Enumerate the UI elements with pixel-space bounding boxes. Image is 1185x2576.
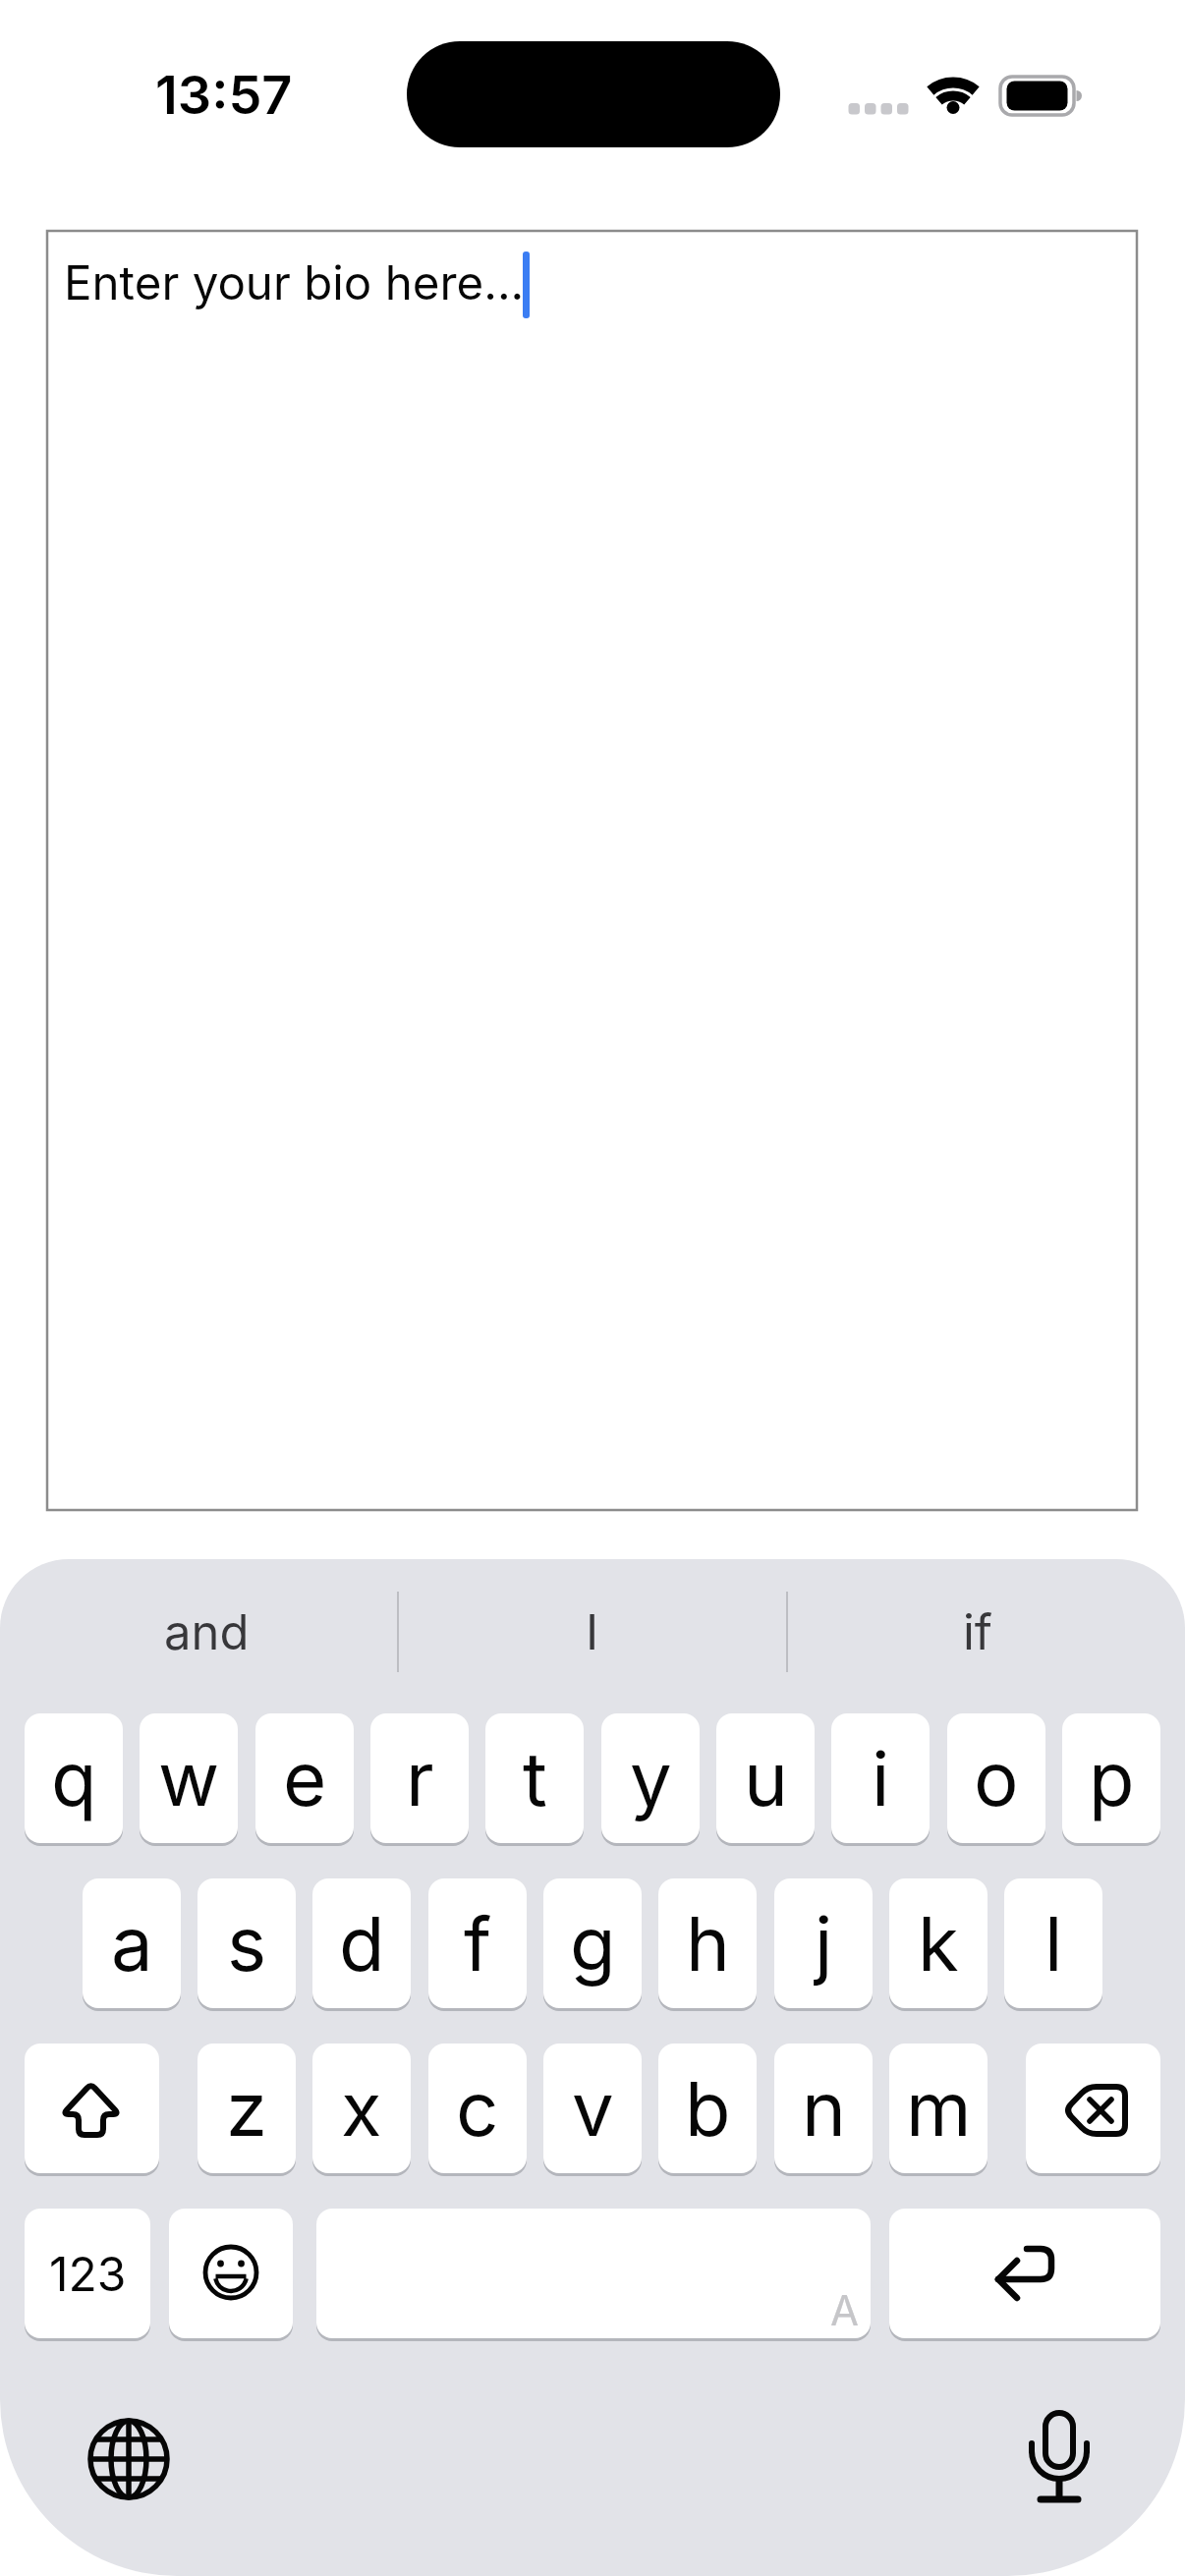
staticText: m bbox=[906, 2063, 972, 2154]
button[interactable]: u bbox=[716, 1713, 815, 1843]
button[interactable]: a bbox=[83, 1878, 181, 2008]
button[interactable]: q bbox=[25, 1713, 123, 1843]
staticText: t bbox=[523, 1733, 547, 1823]
staticText: if bbox=[963, 1603, 993, 1661]
staticText: x bbox=[341, 2063, 382, 2154]
button[interactable]: k bbox=[889, 1878, 987, 2008]
staticText: w bbox=[158, 1733, 220, 1823]
button[interactable]: and bbox=[20, 1580, 393, 1684]
staticText: f bbox=[464, 1898, 492, 1988]
staticText: r bbox=[406, 1733, 434, 1823]
button[interactable]: c bbox=[428, 2044, 527, 2173]
button[interactable]: s bbox=[197, 1878, 296, 2008]
staticText: j bbox=[815, 1898, 833, 1988]
button[interactable]: if bbox=[791, 1580, 1164, 1684]
staticText: 123 bbox=[49, 2245, 127, 2302]
staticText: l bbox=[1044, 1898, 1063, 1988]
button[interactable]: f bbox=[428, 1878, 527, 2008]
button[interactable]: x bbox=[312, 2044, 411, 2173]
button[interactable] bbox=[316, 2209, 871, 2338]
button[interactable]: m bbox=[889, 2044, 987, 2173]
staticText: s bbox=[227, 1898, 267, 1988]
button[interactable]: e bbox=[255, 1713, 354, 1843]
staticText: v bbox=[572, 2063, 614, 2154]
button[interactable]: p bbox=[1062, 1713, 1160, 1843]
staticText: and bbox=[164, 1603, 250, 1661]
button[interactable] bbox=[47, 231, 1137, 1510]
button[interactable] bbox=[1010, 2410, 1108, 2508]
staticText: y bbox=[630, 1733, 672, 1823]
staticText: a bbox=[111, 1898, 153, 1988]
staticText: i bbox=[872, 1733, 890, 1823]
button[interactable]: g bbox=[543, 1878, 642, 2008]
button[interactable]: n bbox=[774, 2044, 873, 2173]
button[interactable]: b bbox=[658, 2044, 757, 2173]
button[interactable]: d bbox=[312, 1878, 411, 2008]
staticText: d bbox=[339, 1898, 385, 1988]
button[interactable]: I bbox=[406, 1580, 779, 1684]
button[interactable]: j bbox=[774, 1878, 873, 2008]
staticText: b bbox=[685, 2063, 731, 2154]
button[interactable]: 123 bbox=[25, 2209, 150, 2338]
staticText: 13:57 bbox=[155, 63, 293, 127]
staticText: p bbox=[1089, 1733, 1135, 1823]
staticText: h bbox=[686, 1898, 730, 1988]
button[interactable]: v bbox=[543, 2044, 642, 2173]
button[interactable]: i bbox=[831, 1713, 930, 1843]
button[interactable] bbox=[1026, 2044, 1160, 2173]
button[interactable] bbox=[80, 2410, 178, 2508]
button[interactable]: l bbox=[1004, 1878, 1102, 2008]
staticText: n bbox=[802, 2063, 846, 2154]
staticText: e bbox=[283, 1733, 327, 1823]
staticText: z bbox=[226, 2063, 267, 2154]
button[interactable]: t bbox=[485, 1713, 584, 1843]
staticText: o bbox=[974, 1733, 1019, 1823]
button[interactable] bbox=[169, 2209, 293, 2338]
staticText: A bbox=[830, 2285, 859, 2335]
staticText: k bbox=[918, 1898, 959, 1988]
staticText: Enter your bio here... bbox=[64, 254, 525, 310]
staticText: g bbox=[570, 1898, 616, 1988]
button[interactable]: o bbox=[947, 1713, 1045, 1843]
staticText: c bbox=[456, 2063, 499, 2154]
button[interactable]: z bbox=[197, 2044, 296, 2173]
button[interactable] bbox=[889, 2209, 1160, 2338]
button[interactable]: h bbox=[658, 1878, 757, 2008]
staticText: q bbox=[51, 1733, 97, 1823]
staticText: I bbox=[586, 1603, 599, 1661]
button[interactable] bbox=[25, 2044, 159, 2173]
button[interactable]: y bbox=[601, 1713, 700, 1843]
button[interactable]: w bbox=[140, 1713, 238, 1843]
staticText: u bbox=[744, 1733, 788, 1823]
button[interactable]: r bbox=[370, 1713, 469, 1843]
